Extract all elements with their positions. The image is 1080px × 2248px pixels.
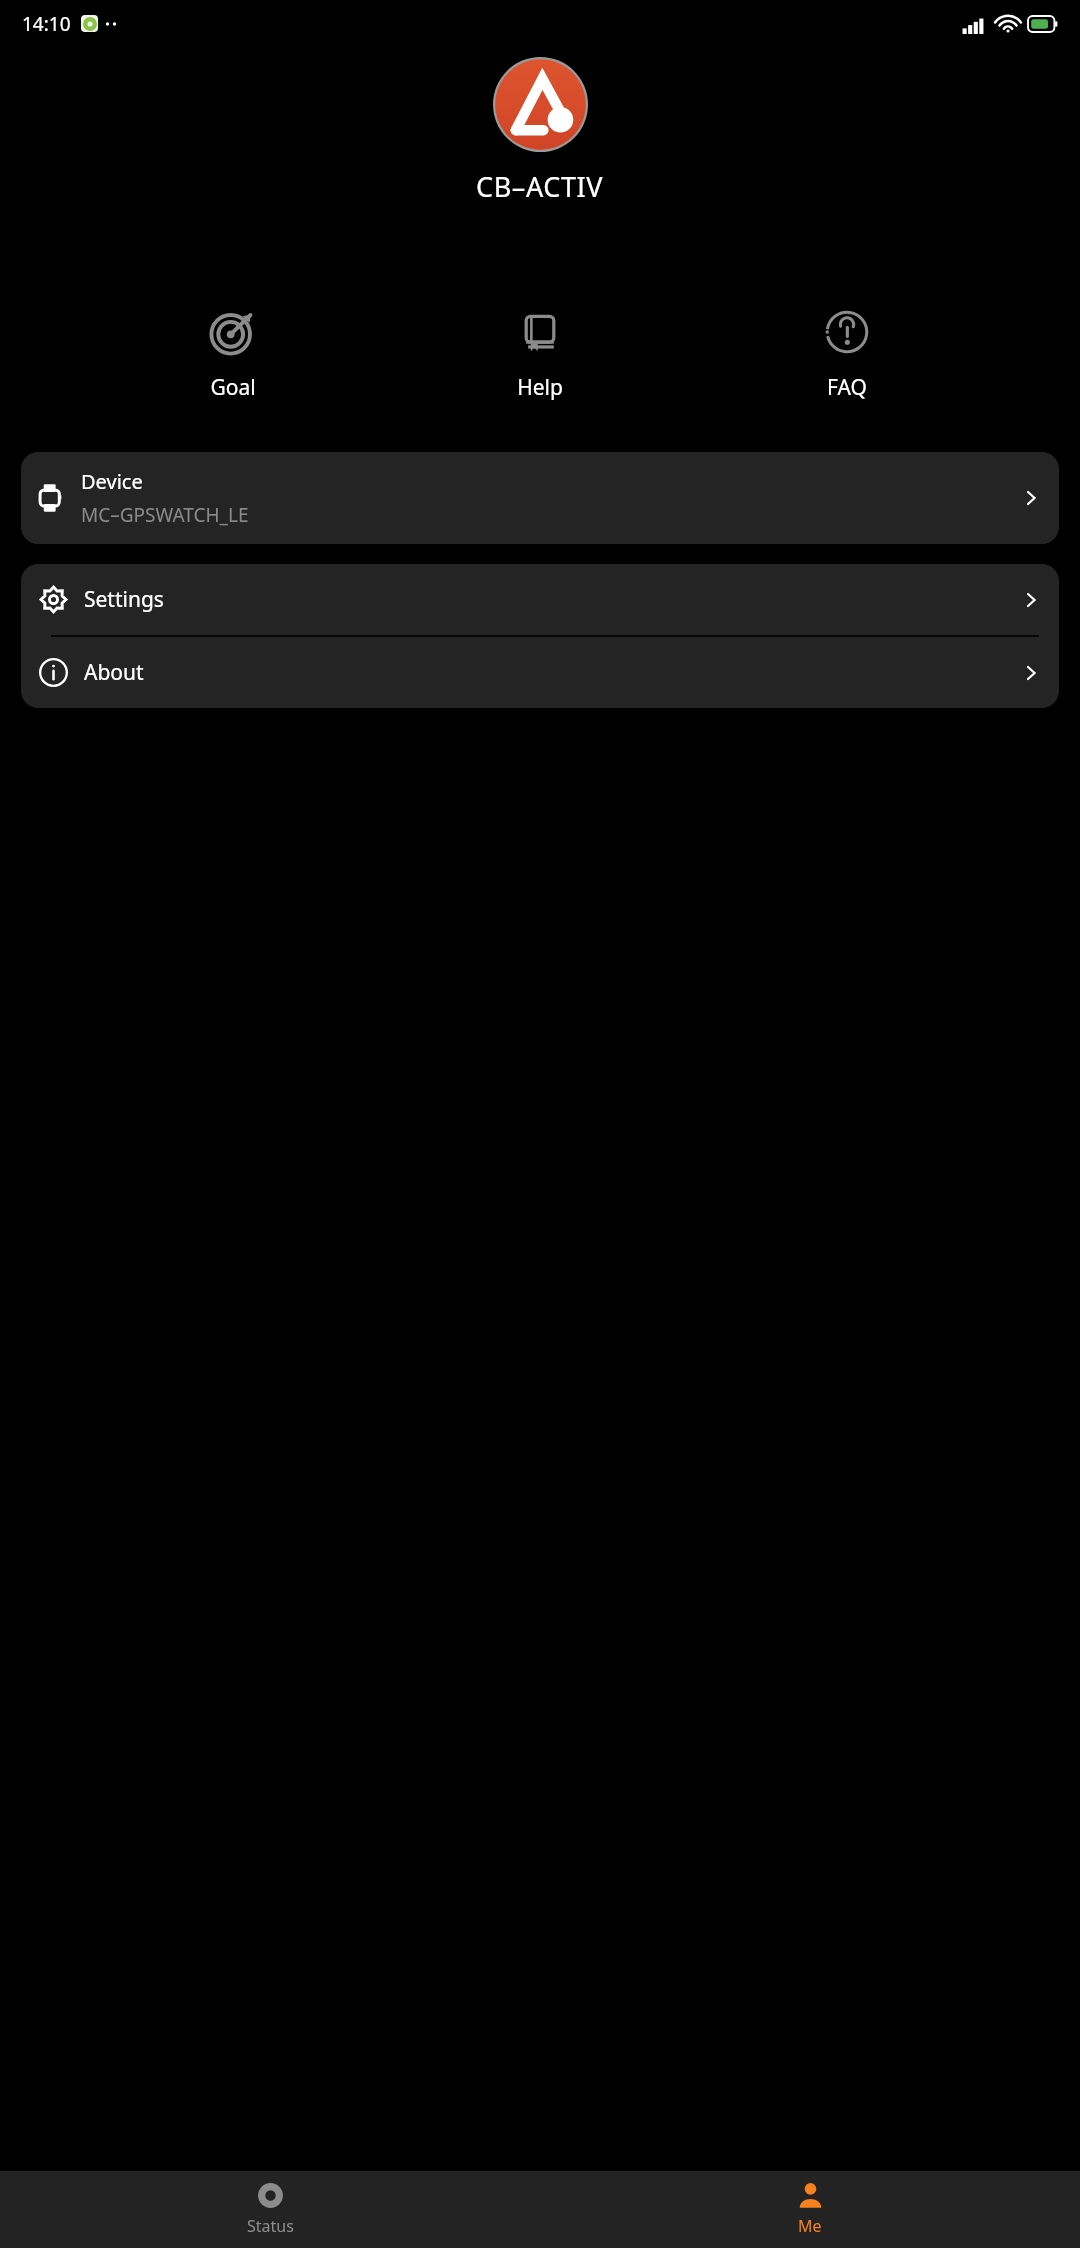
staticText: MC–GPSWATCH_LE: [81, 502, 249, 528]
button[interactable]: Help: [460, 303, 620, 408]
button[interactable]: FAQ: [767, 303, 927, 408]
staticText: Me: [798, 2215, 822, 2237]
staticText: 14:10: [22, 11, 71, 37]
staticText: Settings: [84, 585, 1021, 614]
staticText: Status: [247, 2215, 294, 2237]
button[interactable]: Me: [540, 2171, 1080, 2248]
staticText: FAQ: [827, 373, 867, 402]
staticText: Goal: [210, 373, 256, 402]
staticText: Device: [81, 468, 143, 495]
button[interactable]: Goal: [153, 303, 313, 408]
button[interactable]: Settings: [21, 564, 1059, 635]
button[interactable]: About: [21, 637, 1059, 708]
button[interactable]: Device: [21, 452, 1059, 544]
staticText: About: [84, 658, 1021, 687]
staticText: CB–ACTIV: [476, 168, 604, 205]
button[interactable]: Status: [0, 2171, 540, 2248]
staticText: Help: [517, 373, 563, 402]
